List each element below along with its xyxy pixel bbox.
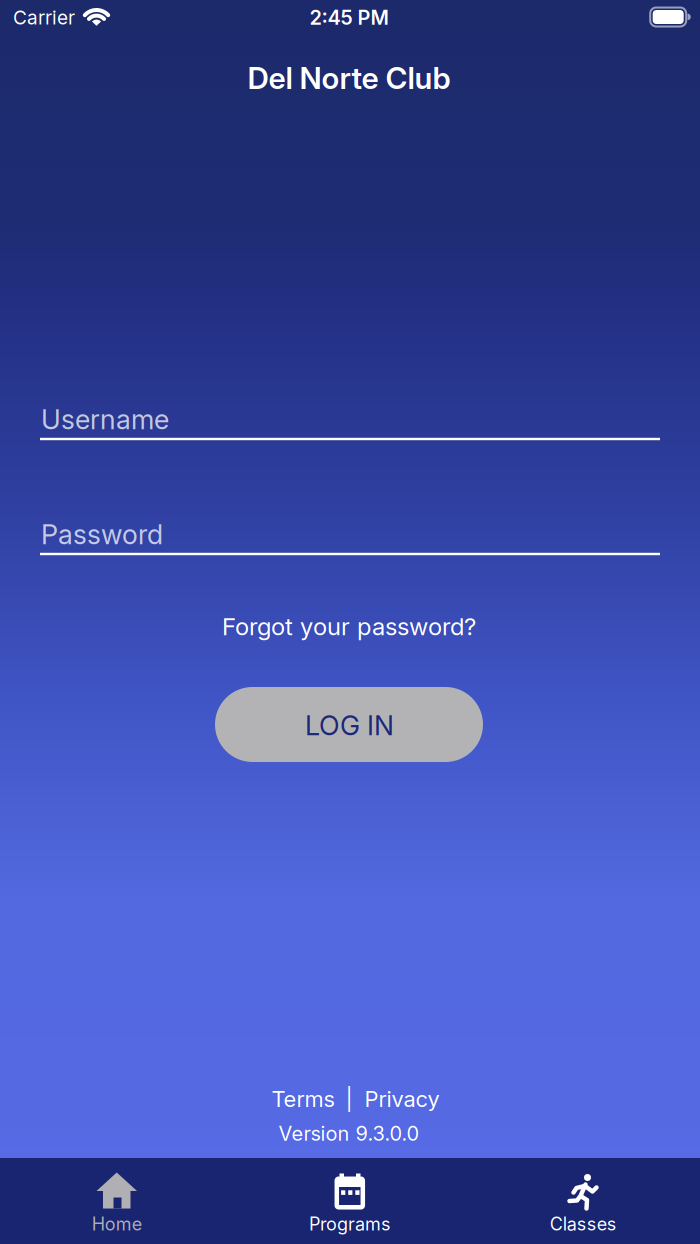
staticText: Terms — [271, 1086, 334, 1112]
staticText: | — [345, 1086, 352, 1112]
staticText: Forgot your password? — [222, 612, 476, 641]
staticText: Username — [41, 403, 169, 436]
staticText: Home — [92, 1213, 142, 1235]
staticText: Password — [41, 518, 163, 551]
staticText: Classes — [550, 1213, 617, 1235]
staticText: 2:45 PM — [309, 5, 388, 30]
staticText: Carrier — [13, 6, 75, 29]
staticText: LOG IN — [305, 709, 394, 742]
staticText: Version 9.3.0.0 — [278, 1121, 419, 1146]
staticText: Del Norte Club — [247, 60, 450, 96]
staticText: Privacy — [364, 1086, 439, 1112]
staticText: Programs — [309, 1213, 391, 1235]
